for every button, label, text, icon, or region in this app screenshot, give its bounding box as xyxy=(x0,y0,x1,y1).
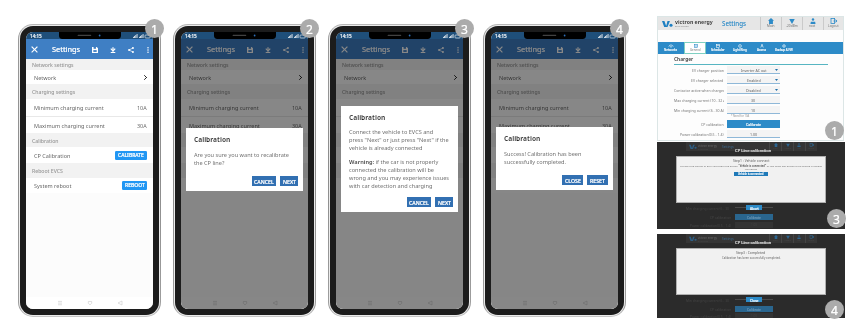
staticText: System reboot xyxy=(34,182,72,189)
button[interactable]: System reboot xyxy=(336,178,463,193)
button[interactable]: Close xyxy=(746,297,762,302)
button[interactable]: Share xyxy=(434,43,447,56)
button[interactable]: Network xyxy=(181,70,308,84)
button[interactable]: Home xyxy=(85,298,95,308)
button[interactable]: More options xyxy=(296,43,308,56)
button[interactable]: Home xyxy=(395,298,405,308)
staticText: Maximum charging current xyxy=(499,122,570,129)
button[interactable]: Share xyxy=(124,43,137,56)
button[interactable]: Home xyxy=(240,298,250,308)
staticText: Calibration xyxy=(497,137,524,144)
button[interactable]: Minimum charging current xyxy=(336,99,463,116)
button[interactable]: Close xyxy=(493,43,506,56)
button[interactable]: Back xyxy=(270,298,280,308)
button[interactable]: Download xyxy=(261,43,274,56)
button[interactable]: Maximum charging current xyxy=(26,117,153,133)
button[interactable]: CP Calibration xyxy=(181,147,308,163)
button[interactable]: CP Calibration xyxy=(491,147,618,163)
button[interactable]: Recents xyxy=(365,298,375,308)
button[interactable]: More options xyxy=(451,43,463,56)
button[interactable]: Network xyxy=(26,70,153,84)
button[interactable]: Light Ring xyxy=(729,42,751,54)
button[interactable]: NEXT xyxy=(435,197,453,207)
button[interactable]: Calibrate xyxy=(727,120,780,128)
button[interactable]: Recents xyxy=(520,298,530,308)
button[interactable]: Minimum charging current xyxy=(491,99,618,116)
button[interactable]: System reboot xyxy=(26,178,153,193)
staticText: BLUE POWER xyxy=(675,25,689,28)
staticText: Settings xyxy=(207,44,236,54)
button[interactable]: Save xyxy=(243,43,256,56)
button[interactable]: REBOOT xyxy=(277,181,302,190)
button[interactable]: Recents xyxy=(210,298,220,308)
button[interactable]: -20dBm xyxy=(781,16,802,30)
button[interactable]: Download xyxy=(106,43,119,56)
button[interactable]: Backup & FW xyxy=(772,42,796,54)
staticText: 4 xyxy=(831,302,838,318)
staticText: root xyxy=(809,24,816,28)
button[interactable]: Share xyxy=(279,43,292,56)
button[interactable]: Save xyxy=(553,43,566,56)
button[interactable]: Save xyxy=(88,43,101,56)
staticText: Success! Calibration has been successful… xyxy=(504,150,582,166)
staticText: NEXT xyxy=(283,178,296,185)
button[interactable]: Back xyxy=(425,298,435,308)
button[interactable]: Recents xyxy=(55,298,65,308)
button[interactable]: More options xyxy=(141,43,153,56)
button[interactable]: CP Calibration xyxy=(26,147,153,163)
button[interactable]: CLOSE xyxy=(562,175,583,185)
button[interactable]: Download xyxy=(571,43,584,56)
staticText: Reboot EVCS xyxy=(342,167,373,174)
staticText: Charging settings xyxy=(497,88,541,95)
button[interactable]: CALIBRATE xyxy=(115,151,147,160)
staticText: Connect the vehicle to EVCS and press "N… xyxy=(349,128,449,152)
button[interactable]: General xyxy=(684,42,706,54)
button[interactable]: Logout xyxy=(823,16,844,30)
button[interactable]: CALIBRATE xyxy=(270,151,302,160)
button[interactable]: Save xyxy=(398,43,411,56)
button[interactable]: System reboot xyxy=(181,178,308,193)
staticText: Power calibration(0.5 - 1.4) xyxy=(690,314,732,318)
button[interactable]: Close xyxy=(183,43,196,56)
button[interactable]: RESET xyxy=(587,175,608,185)
button[interactable]: Abort xyxy=(746,205,762,210)
button[interactable]: Vehicle is connected xyxy=(734,172,768,176)
button[interactable]: NEXT xyxy=(280,176,298,186)
button[interactable]: Close xyxy=(338,43,351,56)
button[interactable]: Back xyxy=(115,298,125,308)
button[interactable]: More options xyxy=(606,43,618,56)
button[interactable]: REBOOT xyxy=(587,181,612,190)
button[interactable]: Network xyxy=(336,70,463,84)
button[interactable]: Maximum charging current xyxy=(181,117,308,133)
button[interactable]: Close xyxy=(28,43,41,56)
staticText: 10A xyxy=(292,104,302,111)
button[interactable]: Minimum charging current xyxy=(26,99,153,116)
button[interactable]: Share xyxy=(589,43,602,56)
button[interactable]: CP Calibration xyxy=(336,147,463,163)
staticText: Enabled xyxy=(747,78,761,83)
button[interactable]: Maximum charging current xyxy=(336,117,463,133)
button[interactable]: Minimum charging current xyxy=(181,99,308,116)
button[interactable]: Back xyxy=(580,298,590,308)
button[interactable]: CALIBRATE xyxy=(580,151,612,160)
button[interactable]: CANCEL xyxy=(252,176,276,186)
button[interactable]: Home xyxy=(550,298,560,308)
button[interactable]: CANCEL xyxy=(407,197,431,207)
button[interactable]: Main xyxy=(760,16,781,30)
button[interactable]: REBOOT xyxy=(122,181,147,190)
button[interactable]: Scheduler xyxy=(706,42,729,54)
button[interactable]: root xyxy=(802,16,823,30)
staticText: General xyxy=(690,48,701,52)
button[interactable]: Access xyxy=(751,42,772,54)
staticText: EV charger position xyxy=(692,68,724,73)
staticText: CP Calibration xyxy=(499,152,536,159)
button[interactable]: Maximum charging current xyxy=(491,117,618,133)
button[interactable]: System reboot xyxy=(491,178,618,193)
button[interactable]: Networks xyxy=(657,42,684,54)
button[interactable]: Download xyxy=(416,43,429,56)
button[interactable]: Network xyxy=(491,70,618,84)
